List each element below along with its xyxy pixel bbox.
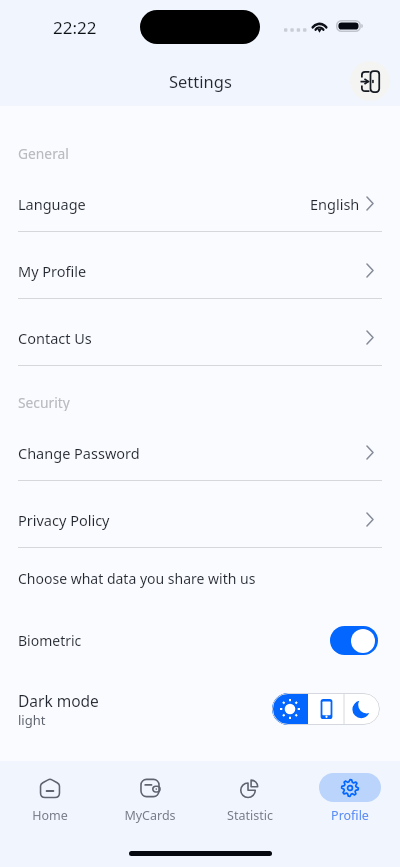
staticText: Dark mode [18,690,99,711]
button[interactable]: Contact Us [0,310,400,365]
staticText: Privacy Policy [18,510,110,530]
staticText: light [18,711,46,728]
staticText: Choose what data you share with us [18,569,256,588]
staticText: Biometric [18,631,82,650]
button[interactable]: Home [0,773,100,824]
button[interactable]: Privacy Policy [0,492,400,547]
staticText: My Profile [18,261,87,281]
button[interactable]: Biometric toggle [330,626,378,655]
button[interactable]: Log out [350,61,390,101]
staticText: MyCards [124,807,176,824]
button[interactable]: My Profile [0,243,400,298]
button[interactable]: Dark mode [344,693,380,725]
staticText: Language [18,194,86,214]
button[interactable]: Language [0,176,400,231]
button[interactable]: Statistic [200,773,300,824]
staticText: English [310,194,360,214]
staticText: Settings [169,70,232,92]
button[interactable]: Change Password [0,425,400,480]
staticText: Security [18,393,70,411]
staticText: Contact Us [18,328,92,348]
button[interactable]: Profile [300,773,400,824]
staticText: 22:22 [53,16,97,39]
button[interactable]: Light mode [272,693,308,725]
staticText: Statistic [227,807,273,824]
staticText: General [18,144,69,162]
button[interactable]: MyCards [100,773,200,824]
staticText: Profile [331,807,369,824]
staticText: Change Password [18,443,140,463]
button[interactable]: System mode [308,693,344,725]
staticText: Home [32,807,68,824]
